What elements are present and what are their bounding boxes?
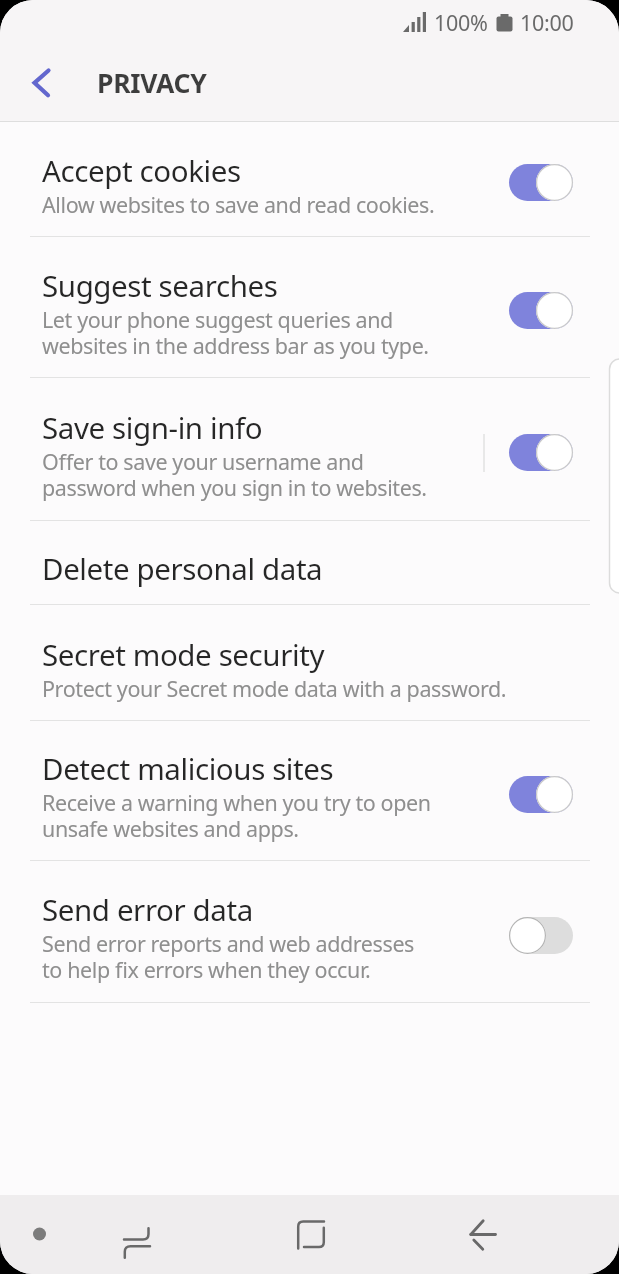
button[interactable]: Secret mode security [0,605,619,721]
button[interactable]: Accept cookies [0,122,619,237]
button[interactable] [509,292,573,329]
staticText: 10:00 [520,8,574,37]
button[interactable]: Send error data [0,861,619,1003]
staticText: Offer to save your username and password… [42,447,427,503]
staticText: Save sign-in info [42,407,263,447]
button[interactable] [509,164,573,201]
button[interactable] [283,1208,337,1262]
button[interactable] [509,776,573,813]
button[interactable] [28,68,52,102]
button[interactable] [456,1208,510,1262]
staticText: Allow websites to save and read cookies. [42,190,435,219]
staticText: Suggest searches [42,265,278,305]
button[interactable] [110,1208,164,1262]
button[interactable]: Save sign-in info [0,378,619,521]
staticText: 100% [434,8,488,37]
staticText: Receive a warning when you try to open u… [42,788,431,844]
button[interactable] [509,917,573,954]
staticText: Detect malicious sites [42,748,334,788]
staticText: Secret mode security [42,634,325,674]
button[interactable] [509,434,573,471]
staticText: Send error reports and web addresses to … [42,929,415,985]
staticText: Send error data [42,889,253,929]
staticText: Accept cookies [42,150,241,190]
staticText: Delete personal data [42,548,323,588]
button[interactable]: Suggest searches [0,237,619,378]
staticText: Protect your Secret mode data with a pas… [42,674,507,703]
button[interactable]: Detect malicious sites [0,721,619,861]
staticText: PRIVACY [97,65,207,101]
staticText: Let your phone suggest queries and websi… [42,305,429,361]
button[interactable]: Delete personal data [0,521,619,605]
